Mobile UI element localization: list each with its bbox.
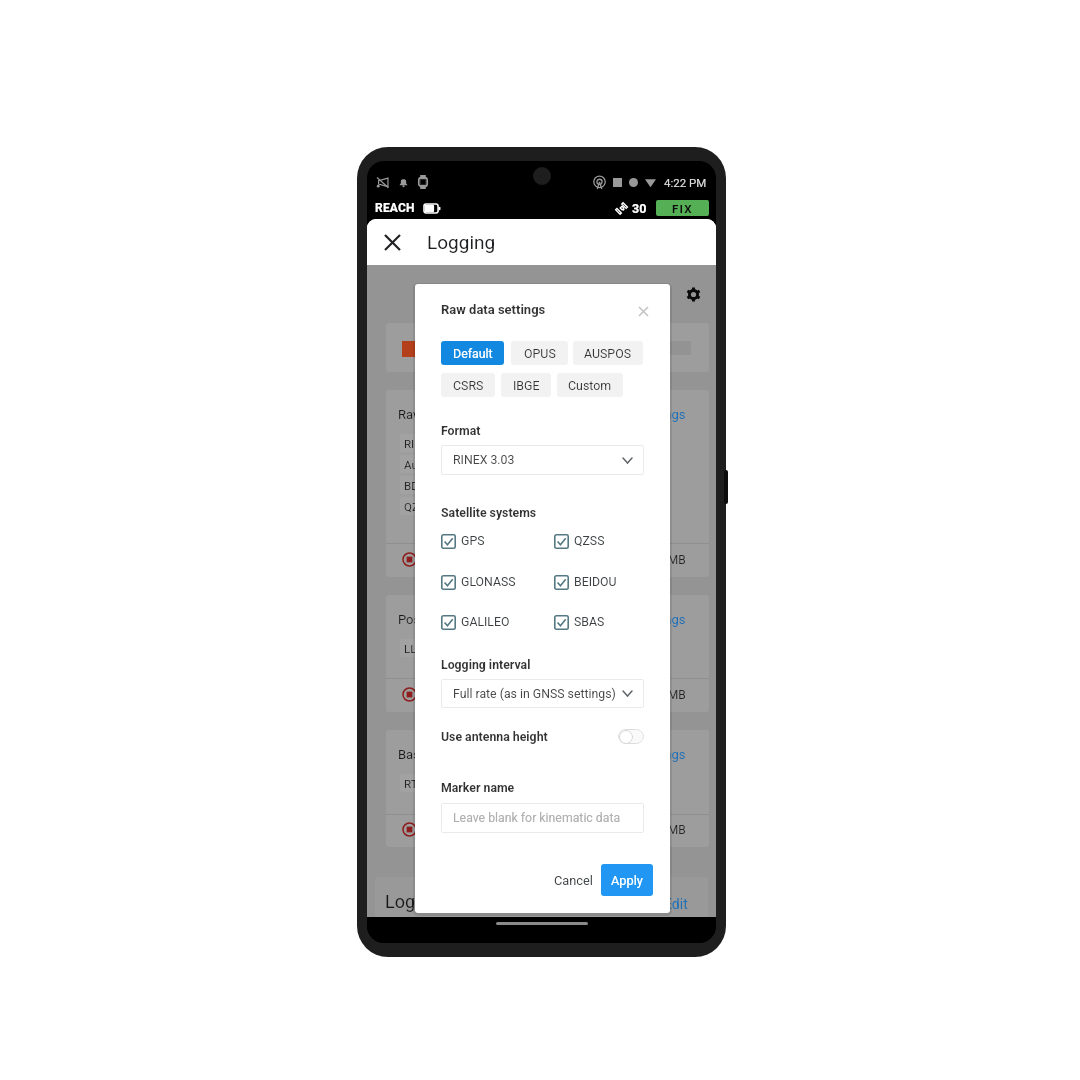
staticText: RINEX 3.03 [453,453,515,467]
button[interactable]: GLONASS [441,572,516,592]
button[interactable]: RINEX 3.03 [441,445,644,475]
button[interactable]: Use antenna height toggle [618,729,644,744]
staticText: Default [453,346,493,361]
button[interactable]: Apply [601,864,653,896]
staticText: GPS [461,534,485,548]
button[interactable]: FIX [656,200,709,216]
staticText: Settings [638,747,686,762]
button[interactable]: Settings [636,746,686,763]
button[interactable]: QZSS [554,531,605,551]
staticText: Logs [385,891,425,912]
staticText: LLH [404,642,425,655]
staticText: Base corrections [398,747,496,762]
staticText: GLONASS [461,575,516,589]
button[interactable]: OPUS [511,341,568,365]
staticText: Settings [638,612,686,627]
staticText: 0 MB [658,553,686,567]
button[interactable]: Settings [636,406,686,423]
staticText: Raw data [398,407,452,422]
staticText: REACH [375,201,415,215]
button[interactable]: Settings [683,284,704,305]
button[interactable]: BEIDOU [554,572,617,592]
staticText: Logging [427,231,496,253]
staticText: Leave blank for kinematic data [453,811,621,825]
button[interactable]: SBAS [554,612,605,632]
staticText: Use antenna height [441,730,548,744]
staticText: OPUS [524,346,556,361]
staticText: Position [398,612,446,627]
staticText: Marker name [441,781,515,795]
button[interactable]: Settings [636,611,686,628]
button[interactable]: IBGE [501,373,551,397]
staticText: 0 MB [658,823,686,837]
staticText: QZSS [574,534,605,548]
staticText: SBAS [574,615,605,629]
staticText: QZSS, GALILEO [404,500,483,513]
staticText: Satellite systems [441,506,537,520]
staticText: RINEX 3.03 [404,437,462,450]
staticText: IBGE [513,378,540,393]
staticText: 0 MB [658,688,686,702]
staticText: Raw data settings [441,302,546,317]
button[interactable]: Close [377,227,407,257]
button[interactable]: AUSPOS [573,341,643,365]
staticText: AutoSurvey [404,458,463,471]
staticText: BEIDOU [574,575,617,589]
staticText: 30 [632,201,647,216]
staticText: Settings [638,407,686,422]
staticText: CSRS [453,378,484,393]
button[interactable]: CSRS [441,373,495,397]
button[interactable]: Close dialog [633,301,653,321]
button[interactable]: GALILEO [441,612,510,632]
staticText: GALILEO [461,615,510,629]
staticText: Edit [664,896,688,912]
button[interactable]: Edit [663,895,689,913]
staticText: Full rate (as in GNSS settings) [453,687,616,701]
button[interactable]: Leave blank for kinematic data [441,803,644,833]
staticText: Apply [611,873,643,888]
staticText: Format [441,424,481,438]
button[interactable]: Default [441,341,504,365]
button[interactable]: Full rate (as in GNSS settings) [441,679,644,708]
staticText: 4:22 PM [664,176,707,189]
staticText: FIX [672,202,693,215]
staticText: Custom [568,378,612,393]
staticText: RTCM3 [404,777,442,790]
button[interactable]: Custom [557,373,623,397]
staticText: Logging interval [441,658,531,672]
staticText: Cancel [554,873,593,888]
button[interactable]: Cancel [546,864,601,896]
staticText: BDS, GLONASS [404,479,482,492]
staticText: AUSPOS [584,346,632,361]
button[interactable]: GPS [441,531,485,551]
